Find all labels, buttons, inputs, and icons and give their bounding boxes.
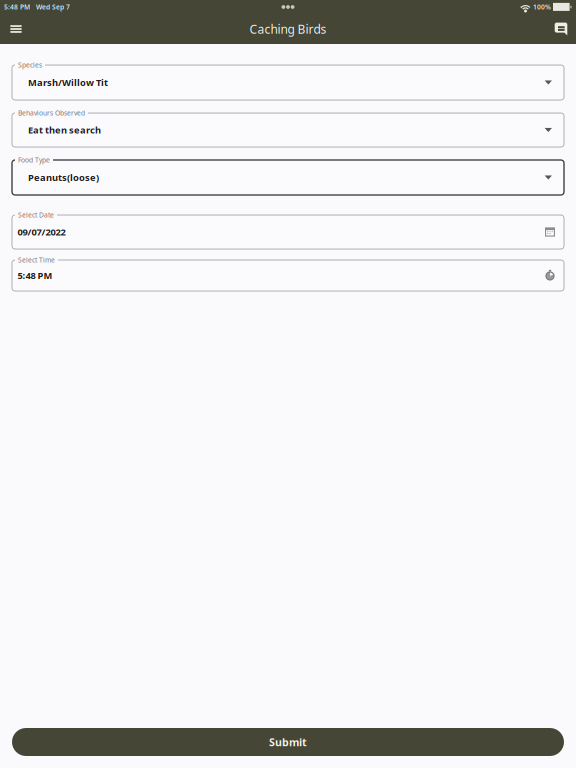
staticText: 5:48 PM <box>4 3 30 11</box>
staticText: Marsh/Willow Tit <box>28 76 108 89</box>
staticText: Select Time <box>18 255 55 264</box>
button[interactable]: Eat then search <box>12 113 564 147</box>
staticText: 5:48 PM <box>17 269 52 282</box>
staticText: Wed Sep 7 <box>36 3 70 11</box>
button[interactable]: Menu <box>5 15 27 43</box>
button[interactable]: 5:48 PM <box>12 260 564 291</box>
staticText: Food Type <box>18 155 50 164</box>
staticText: Eat then search <box>28 124 101 136</box>
button[interactable]: Peanuts(loose) <box>12 160 564 195</box>
staticText: 100% <box>533 3 551 11</box>
staticText: 09/07/2022 <box>17 226 65 238</box>
staticText: Caching Birds <box>249 21 326 37</box>
staticText: Behaviours Observed <box>18 108 85 117</box>
button[interactable]: 09/07/2022 <box>12 215 564 249</box>
staticText: Select Date <box>18 210 54 219</box>
button[interactable]: Submit <box>12 728 564 756</box>
button[interactable]: Comments <box>550 15 572 43</box>
button[interactable]: Marsh/Willow Tit <box>12 65 564 100</box>
staticText: Submit <box>269 735 307 749</box>
staticText: Species <box>18 60 42 69</box>
staticText: Peanuts(loose) <box>28 171 99 184</box>
